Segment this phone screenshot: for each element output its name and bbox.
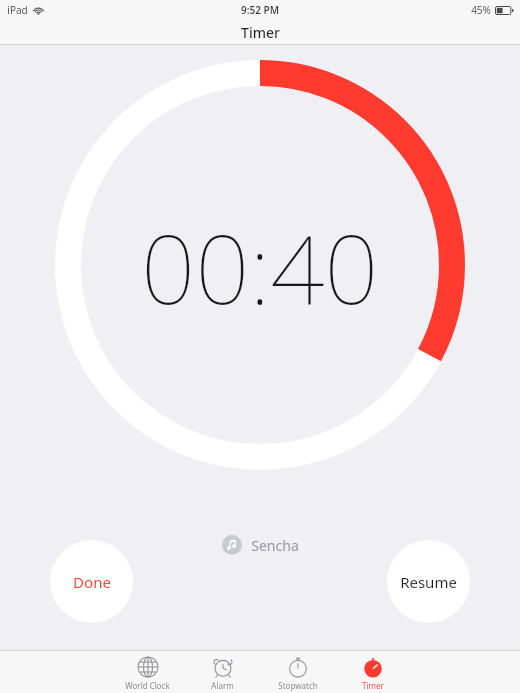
staticText: Sencha bbox=[251, 536, 299, 555]
staticText: Stopwatch bbox=[278, 680, 318, 691]
other: World Clock bbox=[137, 656, 159, 678]
staticText: World Clock bbox=[125, 680, 170, 691]
staticText: Timer bbox=[362, 680, 384, 691]
button[interactable]: World Clock bbox=[110, 654, 185, 691]
button[interactable]: Timer bbox=[335, 654, 410, 691]
staticText: Done bbox=[73, 572, 111, 592]
staticText: 45% bbox=[471, 3, 491, 17]
staticText: Timer bbox=[241, 23, 280, 42]
button[interactable]: Stopwatch bbox=[260, 654, 335, 691]
other: Timer bbox=[362, 656, 384, 678]
staticText: 00:40 bbox=[141, 202, 379, 331]
staticText: 9:52 PM bbox=[241, 3, 279, 17]
staticText: Alarm bbox=[211, 680, 234, 691]
staticText: iPad bbox=[7, 3, 28, 17]
staticText: Resume bbox=[400, 572, 457, 592]
other: Stopwatch bbox=[287, 656, 309, 678]
button[interactable]: Done bbox=[50, 540, 133, 623]
other: Alarm bbox=[212, 656, 234, 678]
button[interactable]: Alarm bbox=[185, 654, 260, 691]
button[interactable]: Resume bbox=[387, 540, 470, 623]
button[interactable]: Sencha bbox=[216, 532, 305, 558]
